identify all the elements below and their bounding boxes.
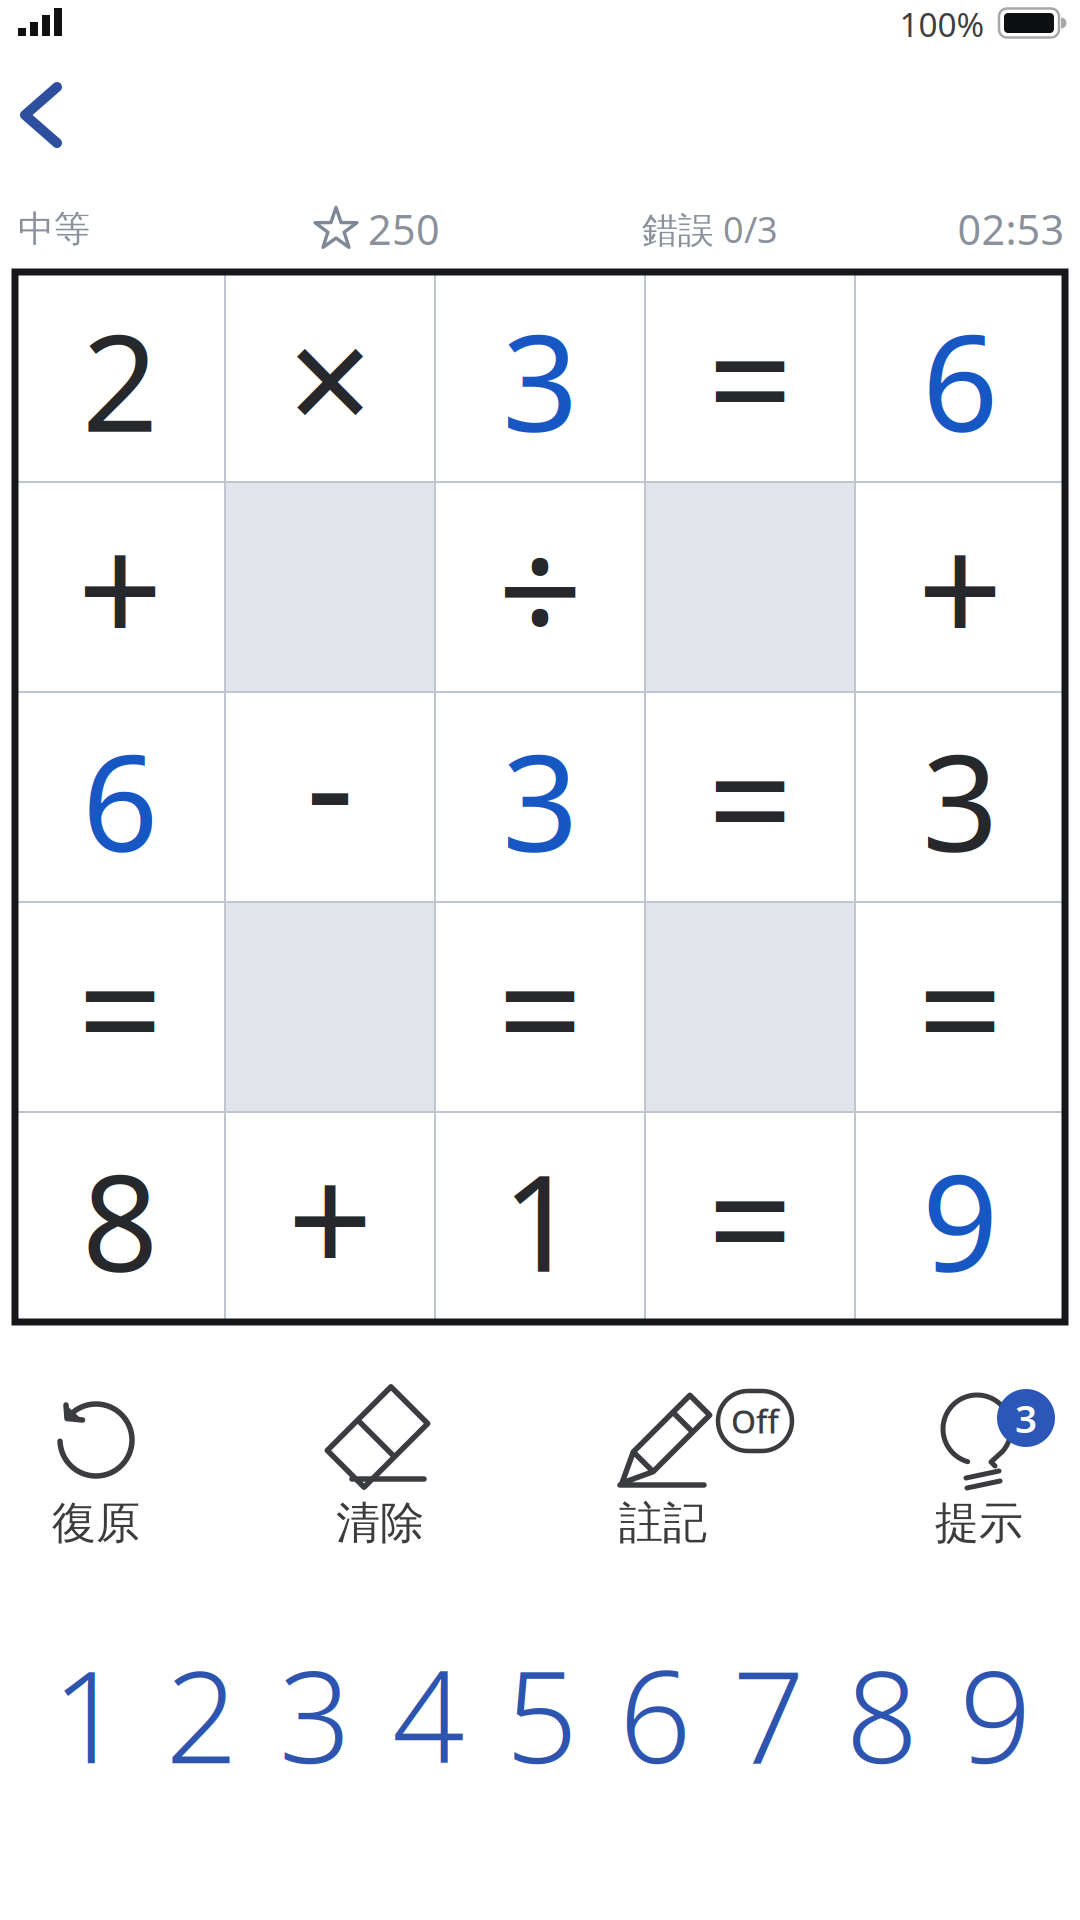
button[interactable]: 註記 — [533, 1373, 793, 1565]
staticText: 3 — [922, 711, 998, 889]
button[interactable]: × — [227, 274, 433, 480]
button[interactable]: = — [17, 904, 223, 1110]
button[interactable]: 9 — [857, 1117, 1063, 1323]
button[interactable]: 8 — [17, 1117, 223, 1323]
staticText: = — [707, 278, 792, 476]
staticText: 4 — [392, 1630, 464, 1798]
staticText: 7 — [732, 1630, 804, 1798]
staticText: 5 — [506, 1630, 578, 1798]
button[interactable]: 提示 — [869, 1373, 1080, 1565]
staticText: 9 — [959, 1630, 1031, 1798]
button[interactable]: + — [17, 484, 223, 690]
staticText: × — [287, 278, 372, 476]
staticText: 3 — [1015, 1392, 1037, 1444]
button[interactable]: 2 — [17, 277, 223, 483]
button[interactable]: ÷ — [437, 484, 643, 690]
button[interactable]: 4 — [374, 1639, 482, 1789]
button[interactable]: 7 — [714, 1639, 822, 1789]
staticText: 250 — [368, 202, 440, 256]
staticText: 6 — [619, 1630, 691, 1798]
staticText: 復原 — [52, 1496, 140, 1550]
staticText: 錯誤 0/3 — [642, 205, 778, 253]
staticText: = — [77, 908, 162, 1106]
button[interactable]: 9 — [941, 1639, 1049, 1789]
button[interactable]: 3 — [437, 697, 643, 903]
button[interactable]: 清除 — [280, 1373, 480, 1565]
staticText: 02:53 — [957, 202, 1064, 256]
staticText: 9 — [922, 1131, 998, 1309]
staticText: 3 — [279, 1630, 351, 1798]
staticText: 100% — [899, 2, 984, 46]
staticText: 3 — [502, 711, 578, 889]
button[interactable]: 6 — [17, 697, 223, 903]
button[interactable]: = — [857, 904, 1063, 1110]
staticText: - — [306, 682, 354, 880]
staticText: = — [707, 698, 792, 896]
button[interactable]: 1 — [437, 1117, 643, 1323]
staticText: 提示 — [935, 1496, 1023, 1550]
button[interactable]: 6 — [601, 1639, 709, 1789]
staticText: 清除 — [336, 1496, 424, 1550]
staticText: = — [917, 908, 1002, 1106]
button[interactable]: 5 — [488, 1639, 596, 1789]
staticText: + — [287, 1118, 372, 1316]
staticText: 3 — [502, 291, 578, 469]
button[interactable]: - — [227, 678, 433, 884]
button[interactable]: + — [227, 1114, 433, 1320]
button[interactable]: = — [647, 274, 853, 480]
staticText: 6 — [82, 711, 158, 889]
staticText: 2 — [165, 1630, 237, 1798]
button[interactable]: Back — [10, 75, 80, 155]
staticText: 中等 — [18, 207, 90, 251]
staticText: = — [497, 908, 582, 1106]
staticText: 註記 — [619, 1496, 707, 1550]
staticText: = — [707, 1118, 792, 1316]
button[interactable]: 2 — [147, 1639, 255, 1789]
staticText: 8 — [82, 1131, 158, 1309]
button[interactable]: 3 — [261, 1639, 369, 1789]
button[interactable]: 復原 — [0, 1373, 196, 1565]
button[interactable]: 6 — [857, 277, 1063, 483]
staticText: 1 — [502, 1131, 578, 1309]
staticText: ÷ — [497, 488, 582, 686]
staticText: 2 — [82, 291, 158, 469]
button[interactable]: + — [857, 484, 1063, 690]
staticText: 6 — [922, 291, 998, 469]
staticText: 1 — [52, 1630, 124, 1798]
button[interactable]: 3 — [857, 697, 1063, 903]
staticText: + — [77, 488, 162, 686]
button[interactable]: = — [647, 1114, 853, 1320]
button[interactable]: 3 — [437, 277, 643, 483]
button[interactable]: = — [437, 904, 643, 1110]
button[interactable]: 8 — [828, 1639, 936, 1789]
staticText: + — [917, 488, 1002, 686]
button[interactable]: 1 — [34, 1639, 142, 1789]
staticText: Off — [731, 1400, 779, 1442]
staticText: 8 — [846, 1630, 918, 1798]
button[interactable]: = — [647, 694, 853, 900]
